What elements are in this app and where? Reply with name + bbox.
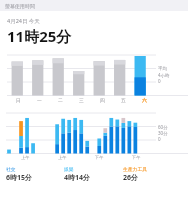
staticText: 上午 <box>58 155 67 160</box>
staticText: 4小時 <box>158 72 170 78</box>
staticText: 平均 <box>158 66 167 72</box>
staticText: 6時15分 <box>6 173 33 183</box>
staticText: 上午 <box>21 155 30 160</box>
button[interactable]: 社交 <box>6 166 64 183</box>
staticText: 4時14分 <box>64 173 91 183</box>
staticText: 螢幕使用時間 <box>5 3 35 9</box>
button[interactable]: 娛樂 <box>64 166 123 183</box>
staticText: 日 <box>16 97 21 103</box>
staticText: 六 <box>142 97 147 103</box>
staticText: 下午 <box>95 155 104 160</box>
staticText: 一 <box>37 97 42 103</box>
staticText: 五 <box>121 97 126 103</box>
staticText: 生產力工具 <box>123 166 147 172</box>
staticText: 四 <box>100 97 105 103</box>
staticText: 下午 <box>132 155 141 160</box>
staticText: 0 <box>158 136 161 142</box>
staticText: 娛樂 <box>64 166 74 172</box>
staticText: 60分 <box>158 124 168 130</box>
staticText: 26分 <box>123 173 139 183</box>
staticText: 二 <box>58 97 63 103</box>
staticText: 三 <box>79 97 84 103</box>
button[interactable]: 60分 <box>0 111 188 163</box>
staticText: 4月24日 今天 <box>7 17 40 25</box>
button[interactable]: 生產力工具 <box>123 166 182 183</box>
button[interactable]: 平均 <box>0 53 188 105</box>
staticText: 30分 <box>158 130 168 136</box>
staticText: 11時25分 <box>7 26 72 46</box>
staticText: 社交 <box>6 166 16 172</box>
staticText: 0 <box>158 78 161 84</box>
